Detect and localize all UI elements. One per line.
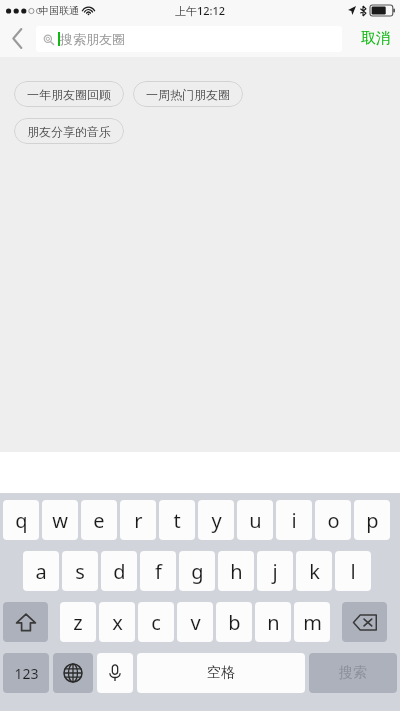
button[interactable]: z (60, 602, 96, 642)
staticText: 搜索朋友圈 (60, 31, 125, 47)
staticText: u (249, 507, 262, 534)
staticText: v (190, 609, 201, 636)
button[interactable]: 朋友分享的音乐 (14, 118, 124, 144)
button[interactable]: e (81, 500, 117, 540)
staticText: n (267, 609, 280, 636)
staticText: 中国联通 (39, 4, 79, 17)
button[interactable]: n (255, 602, 291, 642)
button[interactable]: i (276, 500, 312, 540)
staticText: x (112, 609, 123, 636)
button[interactable]: g (179, 551, 215, 591)
button[interactable]: p (354, 500, 390, 540)
button[interactable]: 123 (3, 653, 49, 693)
button[interactable]: k (296, 551, 332, 591)
button[interactable]: l (335, 551, 371, 591)
button[interactable]: a (23, 551, 59, 591)
button[interactable]: f (140, 551, 176, 591)
button[interactable]: Back (0, 20, 34, 57)
button[interactable]: y (198, 500, 234, 540)
button[interactable]: Voice input (97, 653, 133, 693)
button[interactable]: x (99, 602, 135, 642)
staticText: 123 (14, 664, 39, 683)
staticText: i (291, 507, 297, 534)
button[interactable]: j (257, 551, 293, 591)
staticText: l (350, 558, 356, 585)
button[interactable]: d (101, 551, 137, 591)
button[interactable]: q (3, 500, 39, 540)
staticText: 空格 (207, 664, 235, 682)
button[interactable]: 空格 (137, 653, 305, 693)
button[interactable]: m (294, 602, 330, 642)
staticText: e (93, 507, 105, 534)
button[interactable]: 一周热门朋友圈 (133, 81, 243, 107)
button[interactable]: b (216, 602, 252, 642)
staticText: 取消 (361, 29, 391, 48)
staticText: t (173, 507, 181, 534)
button[interactable]: h (218, 551, 254, 591)
staticText: r (134, 507, 143, 534)
button[interactable]: t (159, 500, 195, 540)
staticText: 一年朋友圈回顾 (27, 87, 111, 102)
button[interactable]: u (237, 500, 273, 540)
button[interactable]: r (120, 500, 156, 540)
staticText: p (366, 507, 379, 534)
staticText: o (327, 507, 340, 534)
button[interactable]: 搜索 (309, 653, 397, 693)
staticText: h (230, 558, 243, 585)
button[interactable]: v (177, 602, 213, 642)
staticText: d (113, 558, 126, 585)
staticText: g (191, 558, 204, 585)
button[interactable]: 取消 (352, 20, 400, 57)
staticText: k (309, 558, 320, 585)
button[interactable]: 搜索朋友圈 (36, 26, 342, 52)
staticText: 搜索 (339, 664, 367, 682)
staticText: a (35, 558, 47, 585)
staticText: 上午12:12 (175, 3, 226, 18)
staticText: 一周热门朋友圈 (146, 87, 230, 102)
staticText: m (303, 609, 322, 636)
staticText: w (52, 507, 68, 534)
staticText: f (155, 558, 162, 585)
button[interactable]: Backspace (342, 602, 387, 642)
button[interactable]: Shift (3, 602, 48, 642)
button[interactable]: s (62, 551, 98, 591)
staticText: z (73, 609, 83, 636)
staticText: j (272, 558, 278, 585)
button[interactable]: o (315, 500, 351, 540)
button[interactable]: 一年朋友圈回顾 (14, 81, 124, 107)
staticText: q (15, 507, 28, 534)
staticText: b (228, 609, 241, 636)
staticText: s (75, 558, 85, 585)
staticText: y (211, 507, 222, 534)
button[interactable]: Switch keyboard (53, 653, 93, 693)
staticText: c (151, 609, 161, 636)
button[interactable]: w (42, 500, 78, 540)
button[interactable]: c (138, 602, 174, 642)
staticText: 朋友分享的音乐 (27, 124, 111, 139)
